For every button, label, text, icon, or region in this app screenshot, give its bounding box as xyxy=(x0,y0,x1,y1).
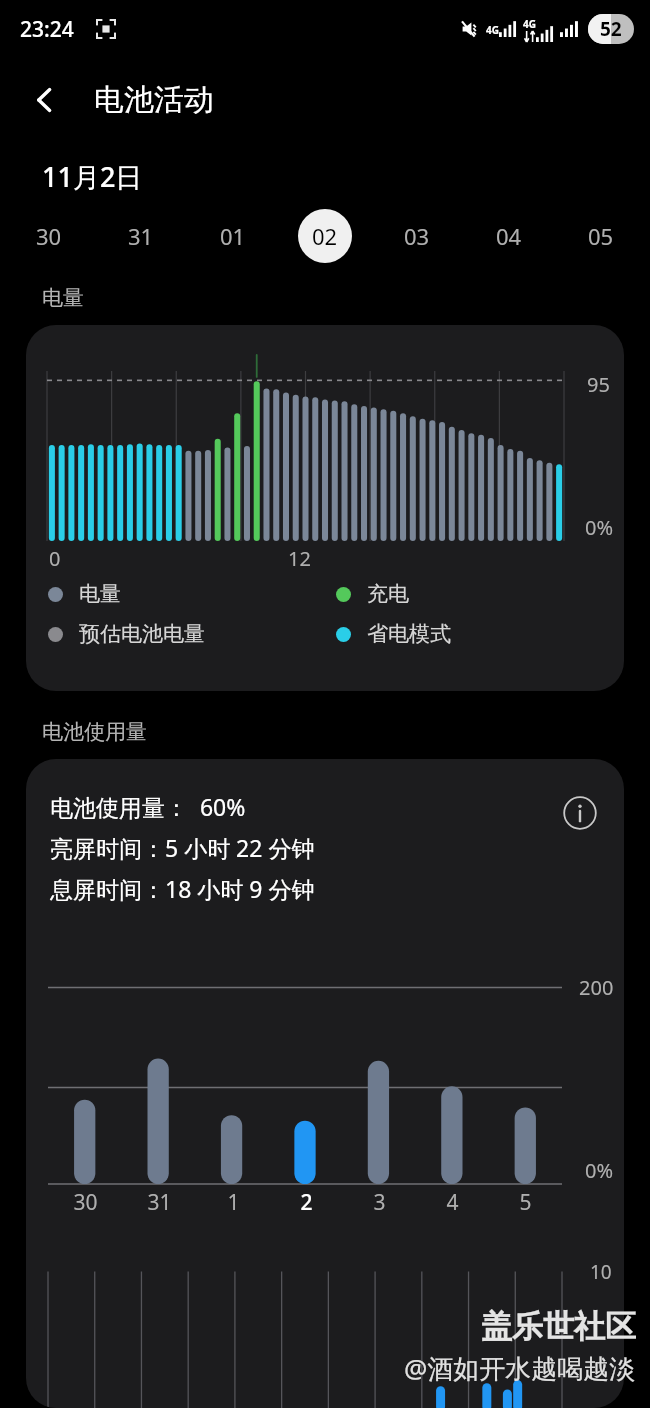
staticText: 200 xyxy=(579,974,614,1001)
staticText: 4G xyxy=(486,23,499,37)
button[interactable]: 返回 xyxy=(18,73,72,127)
staticText: 12 xyxy=(288,545,311,572)
staticText: 05 xyxy=(588,221,614,251)
staticText: 电量 xyxy=(79,581,121,607)
button[interactable]: 02 xyxy=(298,209,352,263)
staticText: @酒如开水越喝越淡 xyxy=(404,1350,636,1386)
button[interactable]: 04 xyxy=(482,209,536,263)
staticText: 11月2日 xyxy=(42,158,143,195)
staticText: 02 xyxy=(312,221,338,251)
button[interactable]: 电池使用量： 60% xyxy=(26,759,624,1408)
staticText: 52 xyxy=(600,16,622,42)
button[interactable]: 31 xyxy=(114,209,168,263)
staticText: 0 xyxy=(49,545,61,572)
staticText: 01 xyxy=(220,221,246,251)
staticText: 0% xyxy=(585,514,614,541)
staticText: 电池使用量 xyxy=(42,719,147,745)
staticText: 充电 xyxy=(367,581,409,607)
staticText: 息屏时间：18 小时 9 分钟 xyxy=(50,873,315,904)
staticText: 预估电池电量 xyxy=(79,621,205,647)
staticText: 95 xyxy=(587,371,610,398)
button[interactable]: 01 xyxy=(206,209,260,263)
staticText: 4 xyxy=(446,1188,459,1217)
staticText: 电量 xyxy=(42,285,84,311)
staticText: 23:24 xyxy=(20,15,74,44)
staticText: 03 xyxy=(404,221,430,251)
staticText: 电池活动 xyxy=(94,81,214,119)
staticText: 31 xyxy=(128,221,154,251)
staticText: 30 xyxy=(73,1188,98,1217)
staticText: 10 xyxy=(590,1259,612,1285)
staticText: 1 xyxy=(227,1188,240,1217)
button[interactable]: 05 xyxy=(574,209,628,263)
staticText: 电池使用量： 60% xyxy=(50,791,246,822)
staticText: 04 xyxy=(496,221,522,251)
staticText: 2 xyxy=(300,1188,313,1217)
button[interactable]: 95 xyxy=(26,325,624,691)
button[interactable]: 30 xyxy=(22,209,76,263)
button[interactable]: 信息 xyxy=(558,791,602,835)
staticText: 省电模式 xyxy=(367,621,451,647)
staticText: 5 xyxy=(519,1188,532,1217)
staticText: 4G xyxy=(523,17,536,31)
staticText: 盖乐世社区 xyxy=(481,1307,636,1346)
staticText: 30 xyxy=(36,221,62,251)
staticText: 0% xyxy=(585,1157,614,1184)
staticText: 31 xyxy=(147,1188,172,1217)
button[interactable]: 03 xyxy=(390,209,444,263)
staticText: 3 xyxy=(373,1188,386,1217)
staticText: 亮屏时间：5 小时 22 分钟 xyxy=(50,832,315,863)
